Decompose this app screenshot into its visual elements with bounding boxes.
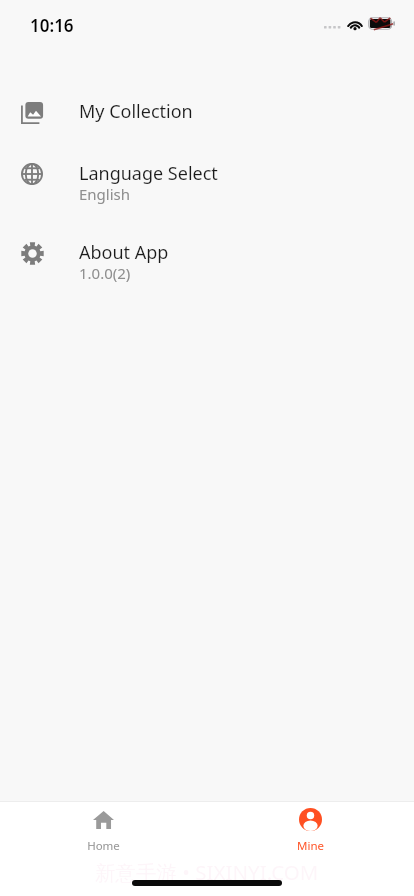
staticText: About App bbox=[79, 240, 169, 265]
button[interactable]: Mine bbox=[207, 802, 414, 853]
button[interactable]: About App bbox=[0, 222, 414, 301]
staticText: Home bbox=[87, 838, 120, 853]
button[interactable]: Home bbox=[0, 802, 207, 853]
staticText: 新意手游 • SIXINYI.COM bbox=[95, 858, 319, 886]
staticText: Language Select bbox=[79, 161, 218, 186]
staticText: Mine bbox=[297, 838, 324, 853]
staticText: English bbox=[79, 184, 131, 204]
staticText: My Collection bbox=[79, 99, 193, 124]
staticText: 10:16 bbox=[30, 14, 74, 37]
button[interactable]: My Collection bbox=[0, 81, 414, 143]
button[interactable]: Language Select bbox=[0, 143, 414, 222]
staticText: 1.0.0(2) bbox=[79, 263, 131, 283]
